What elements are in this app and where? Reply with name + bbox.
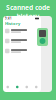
staticText: History (5, 21, 20, 26)
staticText: 9:41 (5, 17, 12, 20)
staticText: history (16, 12, 39, 21)
staticText: Scanned code (6, 3, 50, 12)
